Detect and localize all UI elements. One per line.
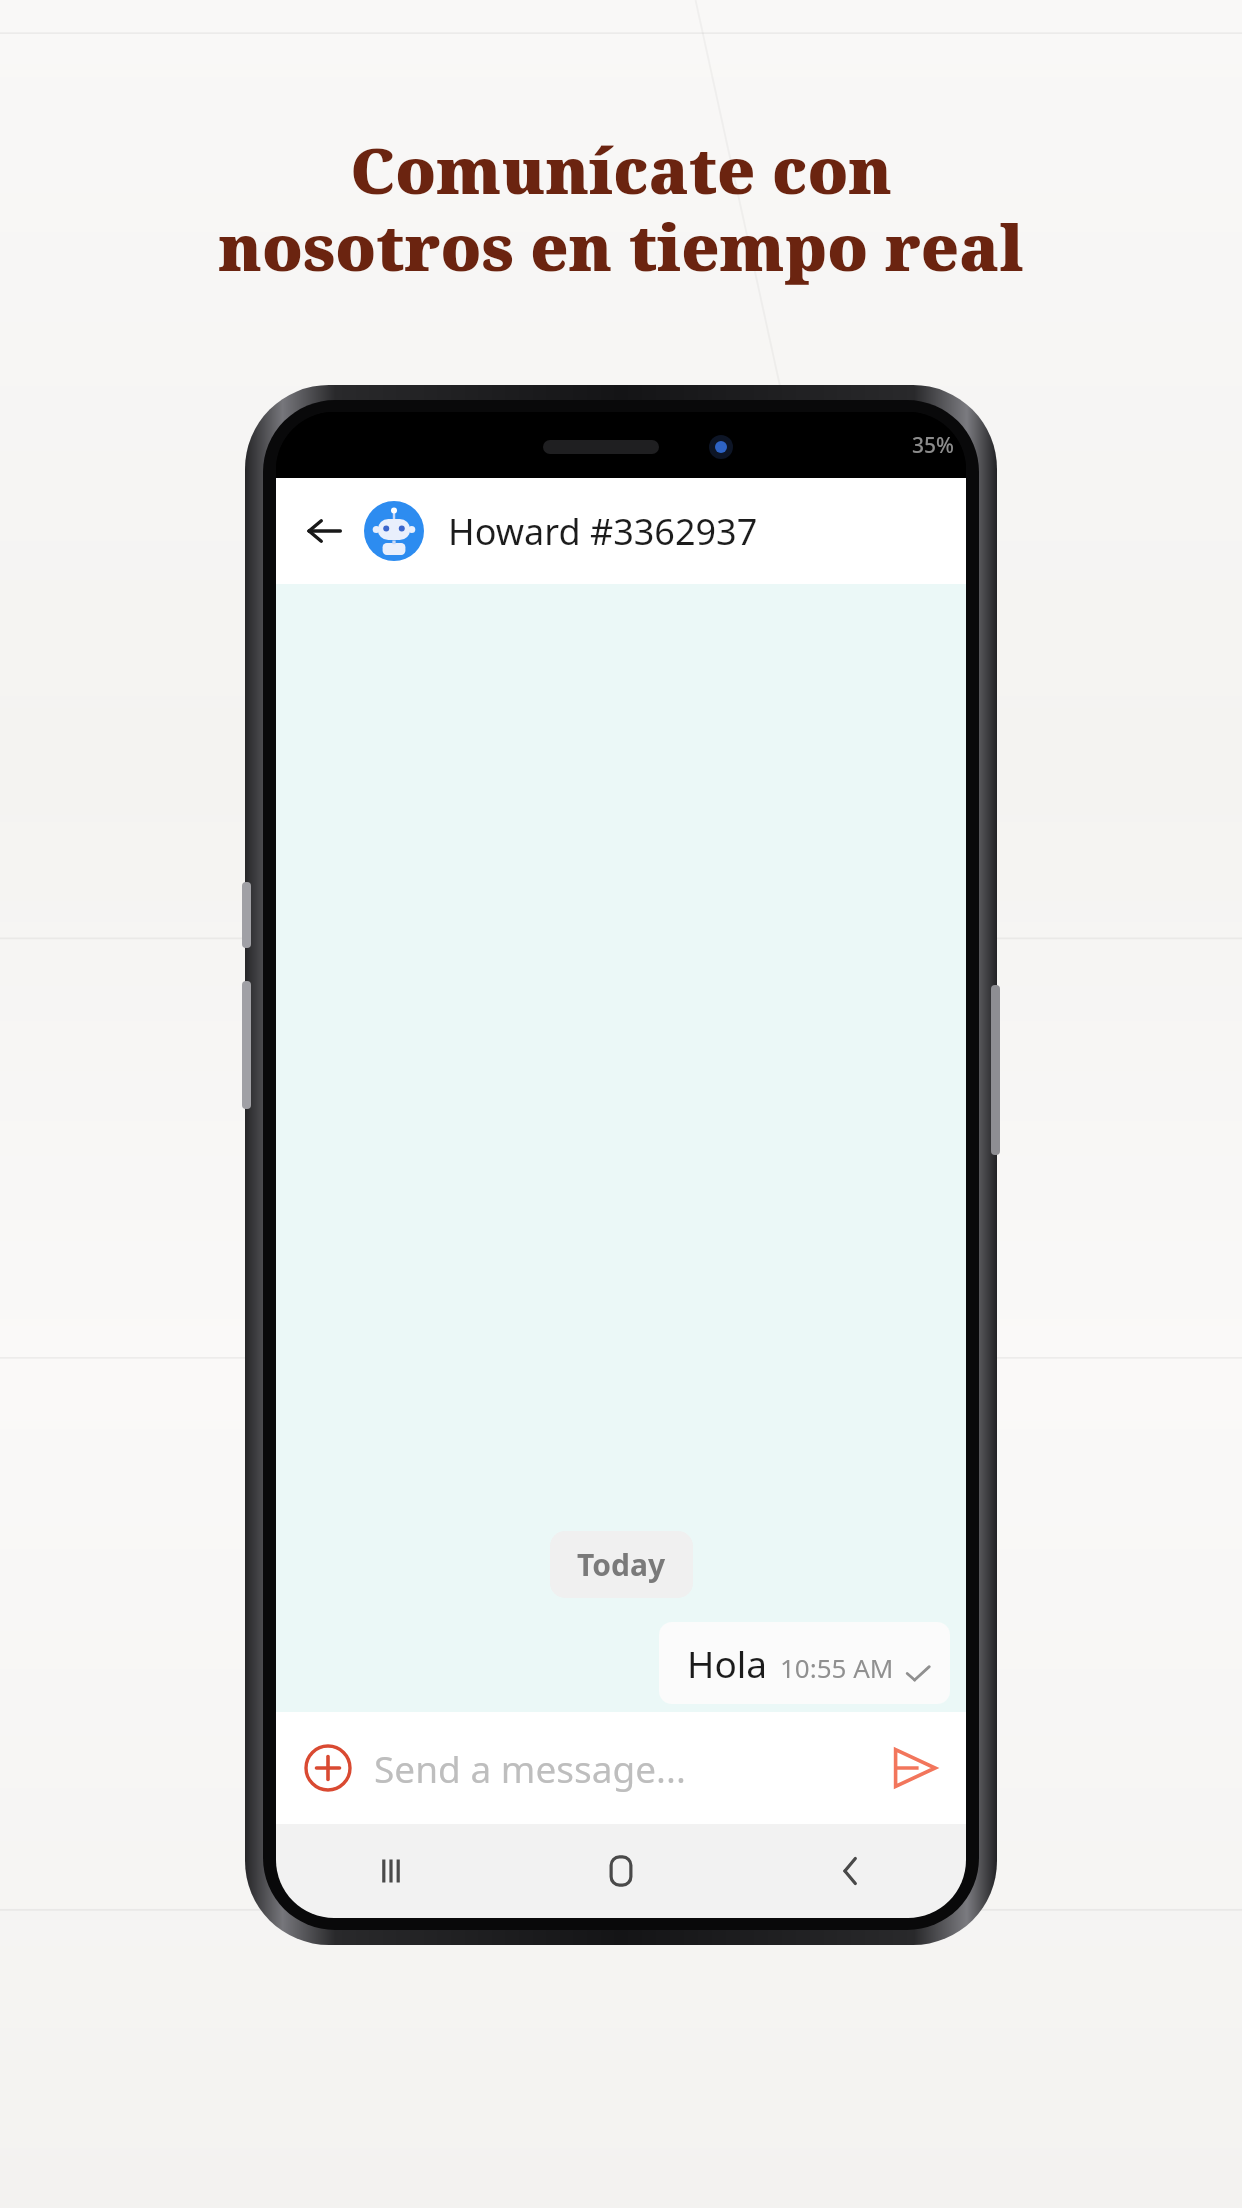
- staticText: Send a message...: [374, 1743, 686, 1793]
- button[interactable]: Back: [296, 503, 352, 559]
- button[interactable]: Hola: [659, 1622, 950, 1704]
- staticText: Hola: [687, 1638, 768, 1688]
- button[interactable]: Recents: [276, 1824, 506, 1918]
- staticText: Howard #3362937: [448, 507, 758, 556]
- staticText: 10:55 AM: [780, 1650, 894, 1685]
- staticText: Comunícate con nosotros en tiempo real: [8, 126, 1234, 289]
- button[interactable]: Send a message...: [374, 1743, 882, 1793]
- staticText: Today: [577, 1544, 666, 1585]
- button[interactable]: Today: [550, 1531, 693, 1598]
- staticText: 35%: [912, 431, 954, 460]
- button[interactable]: Back: [736, 1824, 966, 1918]
- button[interactable]: Send: [882, 1736, 946, 1800]
- button[interactable]: Home: [506, 1824, 736, 1918]
- button[interactable]: Add attachment: [296, 1736, 360, 1800]
